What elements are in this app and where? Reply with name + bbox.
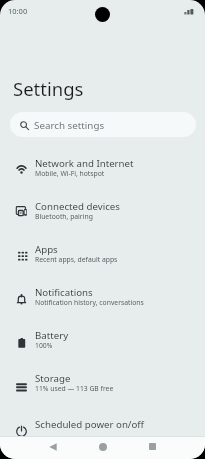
button[interactable]: Battery — [0, 323, 205, 366]
staticText: Search settings — [34, 119, 105, 132]
staticText: Scheduled power on/off — [35, 418, 145, 431]
button[interactable]: Home — [91, 435, 115, 458]
button[interactable]: Recent apps — [140, 435, 164, 458]
staticText: 11% used — 113 GB free — [35, 384, 114, 393]
button[interactable]: Network and Internet — [0, 151, 205, 194]
staticText: Battery — [35, 329, 69, 342]
staticText: 100% — [35, 341, 53, 350]
button[interactable]: Notifications — [0, 280, 205, 323]
staticText: Network and Internet — [35, 157, 134, 170]
button[interactable]: Scheduled power on/off — [0, 409, 205, 452]
button[interactable]: Apps — [0, 237, 205, 280]
staticText: Notification history, conversations — [35, 298, 144, 307]
button[interactable]: Connected devices — [0, 194, 205, 237]
button[interactable]: Back — [41, 435, 65, 458]
staticText: Connected devices — [35, 200, 120, 213]
staticText: Apps — [35, 243, 58, 256]
button[interactable]: Search settings — [10, 112, 196, 137]
staticText: Storage — [35, 372, 71, 385]
staticText: Notifications — [35, 286, 93, 299]
staticText: Mobile, Wi-Fi, hotspot — [35, 169, 105, 178]
staticText: Settings — [13, 76, 84, 101]
staticText: Bluetooth, pairing — [35, 212, 93, 221]
staticText: 10:00 — [8, 6, 28, 16]
button[interactable]: Storage — [0, 366, 205, 409]
staticText: Recent apps, default apps — [35, 255, 118, 264]
